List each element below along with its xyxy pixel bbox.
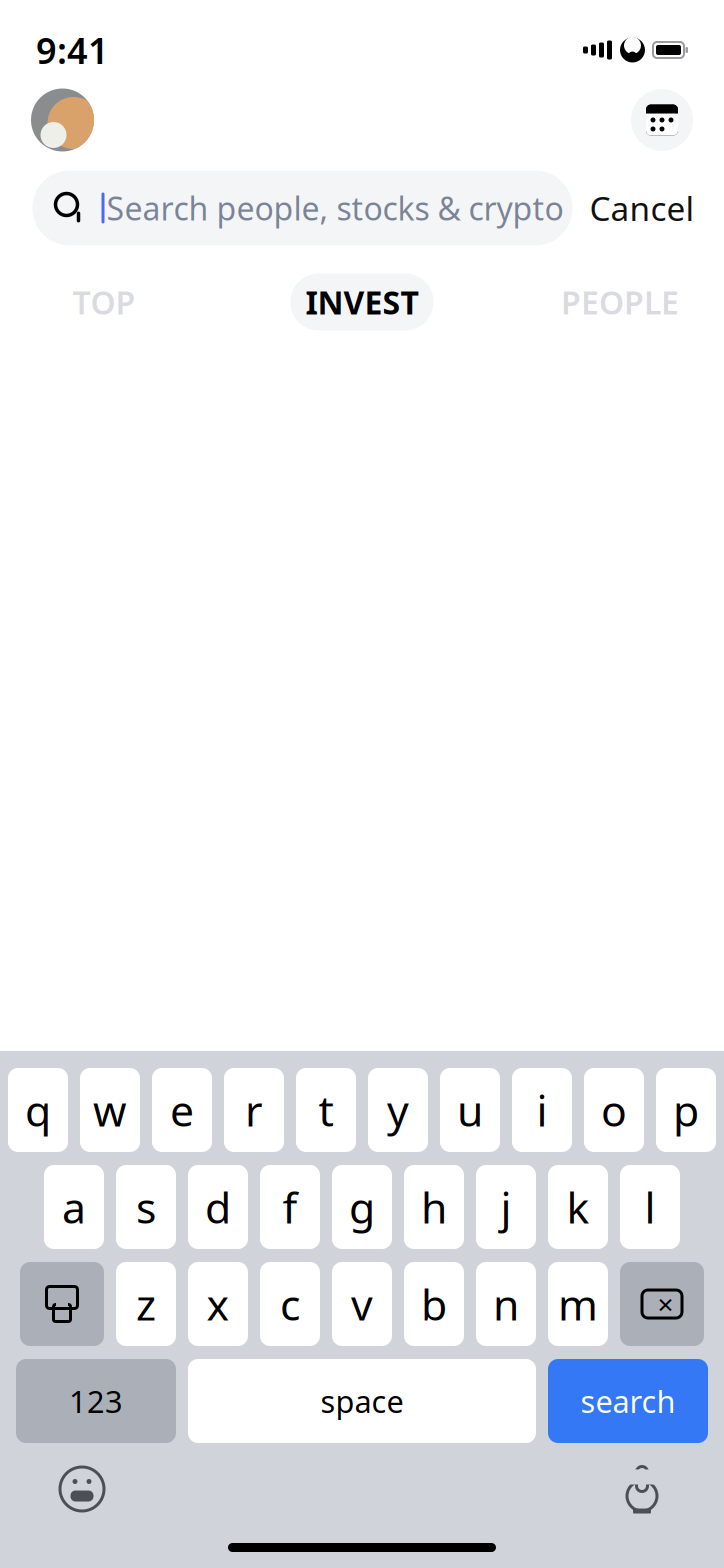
button[interactable]: b bbox=[404, 1262, 464, 1346]
button[interactable]: j bbox=[476, 1165, 536, 1249]
staticText: n bbox=[493, 1276, 519, 1332]
button[interactable]: z bbox=[116, 1262, 176, 1346]
button[interactable]: c bbox=[260, 1262, 320, 1346]
staticText: Search people, stocks & crypto bbox=[106, 187, 563, 229]
staticText: b bbox=[421, 1276, 447, 1332]
button[interactable]: space bbox=[188, 1359, 536, 1443]
button[interactable]: s bbox=[116, 1165, 176, 1249]
staticText: i bbox=[536, 1082, 547, 1138]
button[interactable]: l bbox=[620, 1165, 680, 1249]
button[interactable]: m bbox=[548, 1262, 608, 1346]
button[interactable]: Dictation bbox=[615, 1461, 669, 1517]
staticText: h bbox=[421, 1179, 447, 1235]
button[interactable]: Shift bbox=[20, 1262, 104, 1346]
button[interactable]: v bbox=[332, 1262, 392, 1346]
staticText: v bbox=[351, 1276, 373, 1332]
staticText: × bbox=[657, 1285, 673, 1323]
button[interactable]: e bbox=[152, 1068, 212, 1152]
button[interactable]: u bbox=[440, 1068, 500, 1152]
staticText: m bbox=[558, 1276, 598, 1332]
staticText: 9:41 bbox=[36, 26, 109, 74]
staticText: search bbox=[580, 1381, 675, 1421]
button[interactable]: Emoji bbox=[55, 1462, 109, 1516]
button[interactable]: d bbox=[188, 1165, 248, 1249]
staticText: x bbox=[206, 1276, 229, 1332]
staticText: y bbox=[387, 1082, 409, 1138]
staticText: r bbox=[245, 1082, 263, 1138]
staticText: e bbox=[170, 1082, 194, 1138]
button[interactable]: a bbox=[44, 1165, 104, 1249]
button[interactable]: p bbox=[656, 1068, 716, 1152]
staticText: d bbox=[205, 1179, 231, 1235]
staticText: u bbox=[457, 1082, 483, 1138]
staticText: TOP bbox=[72, 281, 135, 323]
staticText: space bbox=[320, 1381, 403, 1421]
button[interactable]: search bbox=[548, 1359, 708, 1443]
staticText: s bbox=[136, 1179, 156, 1235]
button[interactable]: q bbox=[8, 1068, 68, 1152]
button[interactable]: 123 bbox=[16, 1359, 176, 1443]
button[interactable]: r bbox=[224, 1068, 284, 1152]
button[interactable]: w bbox=[80, 1068, 140, 1152]
button[interactable]: t bbox=[296, 1068, 356, 1152]
staticText: INVEST bbox=[305, 281, 418, 323]
staticText: q bbox=[25, 1082, 51, 1138]
button[interactable]: x bbox=[188, 1262, 248, 1346]
staticText: a bbox=[62, 1179, 86, 1235]
button[interactable]: TOP bbox=[9, 273, 199, 330]
button[interactable]: g bbox=[332, 1165, 392, 1249]
staticText: f bbox=[282, 1179, 297, 1235]
staticText: 123 bbox=[69, 1381, 123, 1421]
staticText: o bbox=[601, 1082, 627, 1138]
button[interactable]: o bbox=[584, 1068, 644, 1152]
staticText: j bbox=[500, 1179, 511, 1235]
button[interactable]: y bbox=[368, 1068, 428, 1152]
button[interactable]: h bbox=[404, 1165, 464, 1249]
staticText: g bbox=[349, 1179, 375, 1235]
staticText: l bbox=[644, 1179, 655, 1235]
button[interactable]: Profile bbox=[31, 88, 94, 151]
button[interactable]: k bbox=[548, 1165, 608, 1249]
staticText: PEOPLE bbox=[561, 281, 679, 323]
staticText: z bbox=[136, 1276, 156, 1332]
button[interactable]: PEOPLE bbox=[525, 273, 715, 330]
staticText: t bbox=[318, 1082, 333, 1138]
button[interactable]: n bbox=[476, 1262, 536, 1346]
staticText: k bbox=[566, 1179, 589, 1235]
staticText: c bbox=[280, 1276, 300, 1332]
button[interactable]: Cancel bbox=[572, 170, 711, 245]
button[interactable]: f bbox=[260, 1165, 320, 1249]
button[interactable]: Delete bbox=[620, 1262, 704, 1346]
staticText: p bbox=[673, 1082, 699, 1138]
button[interactable]: i bbox=[512, 1068, 572, 1152]
staticText: w bbox=[93, 1082, 127, 1138]
button[interactable]: INVEST bbox=[290, 273, 433, 330]
staticText: Cancel bbox=[589, 186, 694, 230]
button[interactable]: Calendar bbox=[631, 89, 693, 151]
